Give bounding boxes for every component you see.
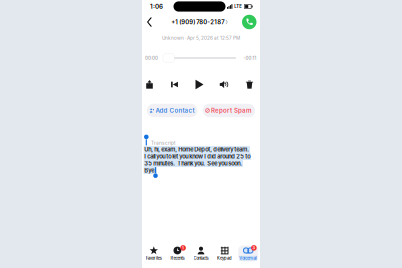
staticText: 1 [182, 245, 184, 250]
staticText: LTE [234, 4, 242, 9]
button[interactable]: Contacts [189, 245, 213, 261]
staticText: Uh, hi, exam, Home Depot, delivery team. [144, 146, 249, 153]
staticText: Recents [170, 256, 184, 261]
button[interactable]: +1 (909) 780-2187 [169, 14, 233, 30]
button[interactable]: Play [192, 77, 207, 92]
button[interactable]: Add Contact [147, 104, 197, 117]
staticText: 3 [252, 245, 255, 250]
staticText: Report Spam [211, 107, 252, 114]
button[interactable]: Voicemail [236, 245, 260, 261]
button[interactable]: Back [142, 13, 158, 30]
staticText: +1 (909) 780-2187 [171, 18, 224, 26]
staticText: 00:00 [145, 55, 158, 61]
staticText: Bye. [144, 167, 156, 174]
button[interactable]: Keypad [213, 245, 236, 261]
staticText: Add Contact [155, 107, 194, 114]
button[interactable]: Call [240, 13, 260, 31]
button[interactable]: Rewind [167, 77, 182, 92]
staticText: 1:06 [150, 3, 163, 10]
button[interactable]: Share [142, 77, 157, 92]
staticText: Voicemail [239, 256, 257, 261]
staticText: Transcript [151, 140, 176, 146]
button[interactable]: Report Spam [203, 104, 255, 117]
staticText: Unknown · Apr 5, 2026 at 12:57 PM [162, 35, 240, 41]
button[interactable]: Favorites [142, 245, 166, 261]
button[interactable]: Delete [242, 77, 257, 92]
staticText: I call you to let you know I did around … [144, 153, 250, 160]
staticText: Keypad [217, 256, 232, 261]
staticText: Contacts [193, 256, 208, 261]
button[interactable]: Recents [166, 245, 189, 261]
staticText: -00:11 [243, 55, 256, 61]
button[interactable]: Speaker [217, 77, 232, 92]
staticText: Favorites [146, 256, 162, 261]
staticText: 35 minutes. Thank you. See you soon. [144, 160, 242, 167]
